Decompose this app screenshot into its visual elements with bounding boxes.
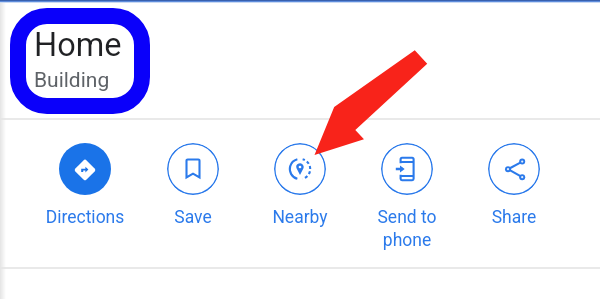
staticText: Share <box>462 207 566 228</box>
button[interactable]: Nearby <box>248 143 352 216</box>
staticText: Save <box>141 207 245 228</box>
button[interactable]: Directions <box>33 143 137 216</box>
staticText: Nearby <box>248 207 352 228</box>
button[interactable]: Home, Building <box>34 26 122 89</box>
staticText: Directions <box>33 207 137 228</box>
staticText: Send to phone <box>355 207 459 250</box>
button[interactable]: Save <box>141 143 245 216</box>
staticText: Building <box>34 68 110 93</box>
button[interactable]: Send to phone <box>355 143 459 238</box>
button[interactable]: Share <box>462 143 566 216</box>
staticText: Home <box>34 26 122 64</box>
